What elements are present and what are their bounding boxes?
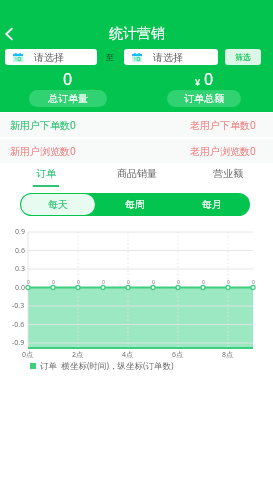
staticText: 订单 横坐标(时间)，纵坐标(订单数) bbox=[40, 360, 174, 372]
staticText: 0 bbox=[127, 279, 130, 286]
staticText: 0 bbox=[152, 279, 155, 286]
staticText: 4点 bbox=[122, 350, 134, 360]
staticText: 请选择 bbox=[153, 51, 183, 64]
staticText: 0 bbox=[202, 279, 205, 286]
button[interactable]: 总订单量 bbox=[29, 90, 107, 107]
staticText: 订单总额 bbox=[184, 92, 224, 105]
staticText: 新用户下单数0 bbox=[10, 118, 76, 132]
staticText: 商品销量 bbox=[117, 167, 157, 180]
staticText: 统计营销 bbox=[109, 25, 165, 43]
staticText: 0 bbox=[77, 279, 80, 286]
staticText: 0 bbox=[27, 279, 30, 286]
staticText: 新用户浏览数0 bbox=[10, 144, 76, 158]
staticText: 每月 bbox=[202, 198, 222, 211]
staticText: 0.0 bbox=[15, 283, 25, 293]
staticText: -0.3 bbox=[12, 301, 25, 311]
staticText: 2点 bbox=[72, 350, 84, 360]
staticText: 老用户下单数0 bbox=[190, 118, 256, 132]
button[interactable]: 每天 bbox=[21, 194, 95, 215]
staticText: 0 bbox=[102, 279, 105, 286]
button[interactable]: 订单总额 bbox=[167, 90, 241, 107]
button[interactable]: 筛选 bbox=[225, 49, 261, 65]
button[interactable]: 请选择 bbox=[124, 49, 218, 65]
staticText: 0 bbox=[52, 279, 55, 286]
button[interactable]: Back bbox=[0, 22, 21, 46]
staticText: 0.9 bbox=[15, 227, 25, 237]
button[interactable]: 每周 bbox=[96, 193, 173, 216]
staticText: 筛选 bbox=[235, 52, 251, 62]
staticText: 每周 bbox=[125, 198, 145, 211]
staticText: 0 bbox=[204, 68, 214, 90]
staticText: 0点 bbox=[22, 350, 34, 360]
staticText: 订单 bbox=[36, 167, 56, 180]
staticText: 0 bbox=[252, 279, 255, 286]
staticText: -0.9 bbox=[12, 338, 25, 348]
staticText: 老用户浏览数0 bbox=[190, 144, 256, 158]
staticText: -0.6 bbox=[12, 320, 25, 330]
button[interactable]: 请选择 bbox=[5, 49, 97, 65]
staticText: 营业额 bbox=[213, 167, 243, 180]
staticText: 请选择 bbox=[34, 51, 64, 64]
staticText: 0 bbox=[177, 279, 180, 286]
staticText: 总订单量 bbox=[48, 92, 88, 105]
button[interactable]: 每月 bbox=[173, 193, 250, 216]
button[interactable]: 营业额 bbox=[182, 164, 273, 190]
staticText: 6点 bbox=[172, 350, 184, 360]
staticText: 0 bbox=[227, 279, 230, 286]
button[interactable]: 新用户浏览数0 bbox=[0, 139, 273, 163]
button[interactable]: 订单 bbox=[0, 164, 91, 190]
staticText: 0.3 bbox=[15, 264, 25, 274]
staticText: 0 bbox=[63, 68, 73, 90]
staticText: 0.6 bbox=[15, 246, 25, 256]
staticText: 至 bbox=[106, 52, 114, 62]
button[interactable]: 新用户下单数0 bbox=[0, 113, 273, 137]
button[interactable]: 商品销量 bbox=[91, 164, 182, 190]
staticText: ¥ bbox=[195, 76, 201, 88]
staticText: 8点 bbox=[222, 350, 234, 360]
staticText: 每天 bbox=[48, 198, 68, 211]
